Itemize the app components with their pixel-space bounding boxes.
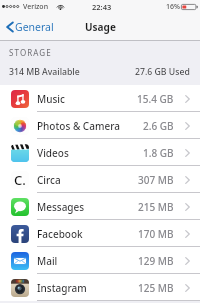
staticText: 27.6 GB Used: [135, 66, 190, 78]
staticText: Messages: [37, 200, 85, 214]
staticText: Music: [37, 92, 65, 106]
staticText: Instagram: [37, 281, 87, 295]
staticText: Verizon: [23, 2, 49, 12]
button[interactable]: Instagram: [0, 274, 200, 301]
staticText: Facebook: [37, 227, 83, 241]
staticText: 22:43: [92, 2, 112, 12]
staticText: General: [15, 20, 54, 34]
staticText: 215 MB: [138, 200, 174, 214]
staticText: 1.8 GB: [143, 146, 174, 160]
button[interactable]: Mail: [0, 247, 200, 274]
button[interactable]: General: [6, 20, 54, 34]
button[interactable]: Videos: [0, 139, 200, 166]
staticText: Mail: [37, 254, 58, 268]
staticText: C.: [14, 171, 26, 189]
button[interactable]: Messages: [0, 193, 200, 220]
staticText: 314 MB Available: [9, 66, 80, 78]
button[interactable]: Music: [0, 85, 200, 112]
staticText: 170 MB: [138, 227, 174, 241]
button[interactable]: C.: [0, 166, 200, 193]
staticText: 2.6 GB: [143, 119, 174, 133]
staticText: Photos & Camera: [37, 119, 120, 133]
staticText: 129 MB: [138, 254, 174, 268]
staticText: Circa: [37, 173, 61, 187]
staticText: 15.4 GB: [137, 92, 174, 106]
staticText: 307 MB: [138, 173, 174, 187]
staticText: Videos: [37, 146, 69, 160]
staticText: 16%: [166, 2, 180, 12]
staticText: 125 MB: [138, 281, 174, 295]
staticText: STORAGE: [9, 47, 52, 58]
button[interactable]: Facebook: [0, 220, 200, 247]
staticText: Usage: [85, 20, 116, 34]
button[interactable]: Photos & Camera: [0, 112, 200, 139]
